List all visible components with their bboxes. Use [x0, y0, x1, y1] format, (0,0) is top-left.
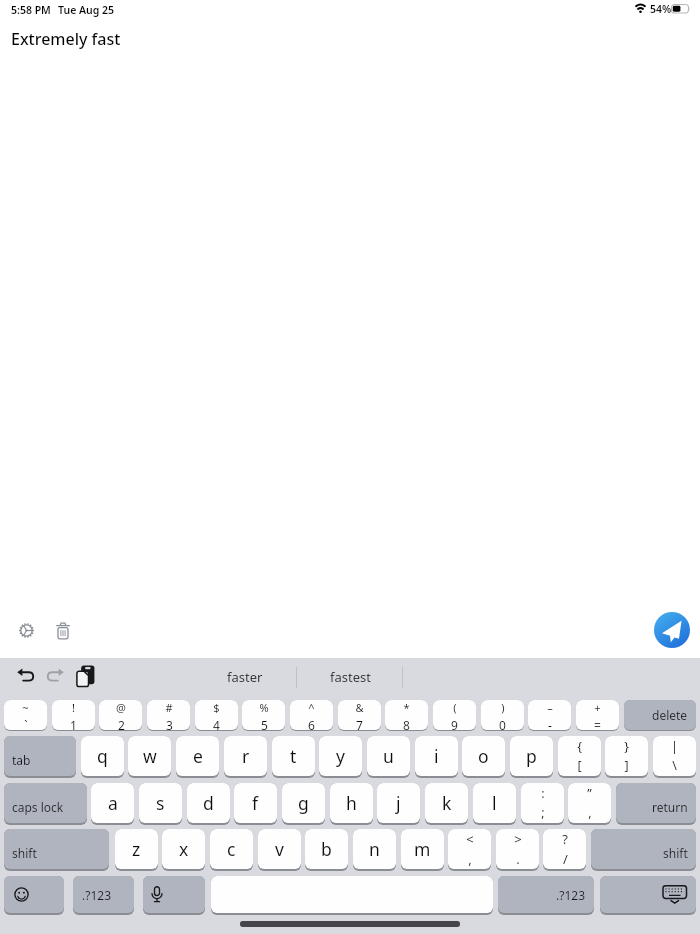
button[interactable] — [600, 876, 696, 913]
button[interactable]: faster — [205, 665, 285, 688]
button[interactable]: q — [81, 736, 124, 776]
button[interactable] — [16, 666, 35, 685]
button[interactable]: p — [510, 736, 553, 776]
button[interactable]: c — [210, 829, 253, 869]
button[interactable]: s — [139, 783, 182, 823]
button[interactable]: h — [330, 783, 373, 823]
button[interactable]: m — [401, 829, 444, 869]
staticText: 2 — [118, 717, 125, 730]
button[interactable]: * — [385, 700, 428, 730]
button[interactable]: < — [448, 829, 491, 869]
button[interactable]: l — [473, 783, 516, 823]
staticText: } — [624, 738, 629, 755]
button[interactable] — [55, 622, 71, 640]
button[interactable]: y — [319, 736, 362, 776]
staticText: q — [97, 744, 108, 768]
staticText: [ — [577, 757, 582, 774]
button[interactable]: | — [653, 736, 696, 776]
button[interactable]: ( — [433, 700, 476, 730]
button[interactable]: v — [258, 829, 301, 869]
staticText: ` — [24, 717, 28, 730]
button[interactable]: j — [377, 783, 420, 823]
button[interactable]: x — [162, 829, 205, 869]
staticText: x — [179, 837, 189, 861]
staticText: ] — [624, 757, 629, 774]
button[interactable]: r — [224, 736, 267, 776]
button[interactable]: fastest — [310, 665, 390, 688]
staticText: : — [541, 785, 545, 802]
staticText: s — [156, 791, 165, 815]
staticText: f — [252, 791, 259, 815]
staticText: < — [466, 830, 474, 848]
staticText: $ — [213, 700, 220, 715]
button[interactable]: @ — [99, 700, 142, 730]
button[interactable]: t — [272, 736, 315, 776]
staticText: 3 — [166, 717, 173, 730]
staticText: w — [143, 744, 157, 768]
button[interactable]: n — [353, 829, 396, 869]
button[interactable]: shift — [591, 829, 696, 869]
button[interactable]: d — [187, 783, 230, 823]
button[interactable] — [17, 621, 36, 640]
button[interactable]: ) — [481, 700, 524, 730]
button[interactable]: ^ — [290, 700, 333, 730]
button[interactable]: { — [558, 736, 601, 776]
button[interactable]: w — [128, 736, 171, 776]
button[interactable]: > — [496, 829, 539, 869]
button[interactable]: $ — [195, 700, 238, 730]
button[interactable]: ! — [52, 700, 95, 730]
button[interactable]: .?123 — [498, 876, 594, 913]
button[interactable]: tab — [4, 736, 76, 776]
button[interactable]: o — [462, 736, 505, 776]
button[interactable]: caps lock — [4, 783, 87, 823]
staticText: ; — [541, 804, 545, 821]
staticText: 4 — [213, 717, 220, 730]
staticText: ” — [587, 785, 592, 802]
button[interactable]: shift — [4, 829, 109, 869]
staticText: Extremely fast — [11, 28, 121, 50]
button[interactable]: b — [305, 829, 348, 869]
staticText: / — [563, 850, 568, 868]
staticText: { — [577, 738, 582, 755]
staticText: ? — [562, 830, 568, 848]
button[interactable]: ~ — [4, 700, 47, 730]
button[interactable]: – — [528, 700, 571, 730]
button[interactable]: delete — [624, 700, 696, 730]
staticText: .?123 — [556, 887, 586, 903]
button[interactable] — [4, 876, 64, 913]
staticText: 8 — [403, 717, 410, 730]
staticText: . — [516, 850, 520, 868]
staticText: b — [321, 837, 332, 861]
button[interactable]: a — [91, 783, 134, 823]
staticText: h — [346, 791, 357, 815]
staticText: 9 — [451, 717, 458, 730]
button[interactable]: .?123 — [73, 876, 134, 913]
staticText: c — [227, 837, 236, 861]
button[interactable]: k — [425, 783, 468, 823]
button[interactable] — [654, 612, 690, 648]
staticText: shift — [663, 845, 688, 861]
staticText: l — [492, 791, 497, 815]
staticText: n — [369, 837, 380, 861]
button[interactable]: ? — [543, 829, 586, 869]
button[interactable]: e — [176, 736, 219, 776]
staticText: m — [414, 837, 431, 861]
button[interactable] — [143, 876, 205, 913]
button[interactable]: f — [234, 783, 277, 823]
button[interactable]: return — [616, 783, 696, 823]
button[interactable]: : — [521, 783, 564, 823]
button[interactable]: & — [338, 700, 381, 730]
button[interactable]: % — [242, 700, 285, 730]
button[interactable]: u — [367, 736, 410, 776]
button[interactable] — [46, 666, 65, 685]
button[interactable]: + — [576, 700, 619, 730]
button[interactable]: # — [147, 700, 190, 730]
button[interactable]: ” — [568, 783, 611, 823]
button[interactable]: z — [115, 829, 158, 869]
button[interactable] — [76, 665, 95, 687]
button[interactable] — [211, 876, 493, 913]
button[interactable]: i — [415, 736, 458, 776]
button[interactable]: } — [605, 736, 648, 776]
staticText: + — [594, 700, 601, 715]
button[interactable]: g — [282, 783, 325, 823]
